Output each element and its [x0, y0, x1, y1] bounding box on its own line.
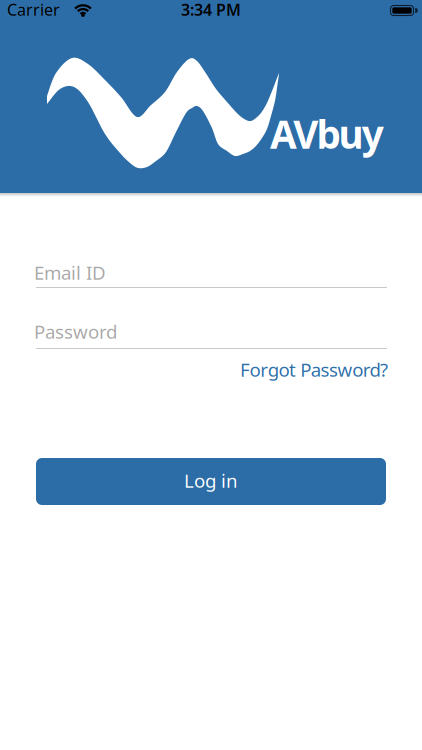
staticText: AVbuy — [270, 108, 384, 159]
staticText: Password — [34, 319, 117, 344]
staticText: Log in — [184, 468, 238, 493]
button[interactable]: Forgot Password? — [240, 357, 388, 382]
staticText: 3:34 PM — [181, 0, 241, 20]
button[interactable]: Email ID — [34, 260, 387, 288]
button[interactable]: Log in — [36, 458, 386, 505]
staticText: Forgot Password? — [240, 357, 388, 382]
staticText: Email ID — [34, 260, 106, 285]
button[interactable]: Password — [34, 319, 387, 349]
staticText: Carrier — [7, 0, 60, 20]
